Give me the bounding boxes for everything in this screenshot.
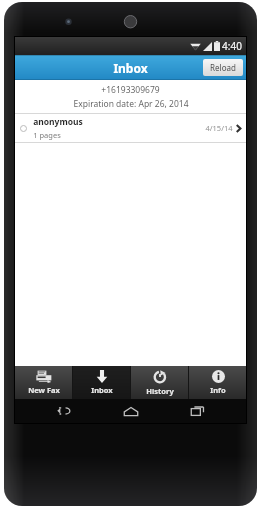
- other: Inbox: [96, 370, 108, 383]
- staticText: +16193309679: [101, 84, 160, 96]
- other: Info: [212, 370, 225, 383]
- button[interactable]: New Fax: [15, 366, 72, 399]
- staticText: Expiration date: Apr 26, 2014: [73, 98, 189, 110]
- button[interactable]: Recent apps: [180, 399, 214, 423]
- staticText: anonymous: [33, 116, 83, 128]
- button[interactable]: anonymous: [15, 114, 246, 142]
- staticText: Inbox: [113, 60, 148, 76]
- button[interactable]: Info: [189, 366, 246, 399]
- staticText: Inbox: [91, 385, 113, 395]
- staticText: 1 pages: [33, 130, 61, 140]
- staticText: Reload: [210, 62, 236, 73]
- button[interactable]: Reload: [203, 59, 243, 76]
- other: New Fax: [36, 370, 52, 383]
- other: History: [153, 370, 167, 384]
- staticText: History: [146, 386, 174, 396]
- button[interactable]: Back: [47, 399, 81, 423]
- button[interactable]: Inbox: [73, 366, 130, 399]
- staticText: 4:40: [222, 39, 242, 53]
- staticText: Info: [210, 385, 226, 395]
- staticText: 4/15/14: [205, 123, 233, 133]
- button[interactable]: History: [131, 366, 188, 399]
- button[interactable]: Home: [114, 399, 148, 423]
- staticText: New Fax: [28, 385, 60, 395]
